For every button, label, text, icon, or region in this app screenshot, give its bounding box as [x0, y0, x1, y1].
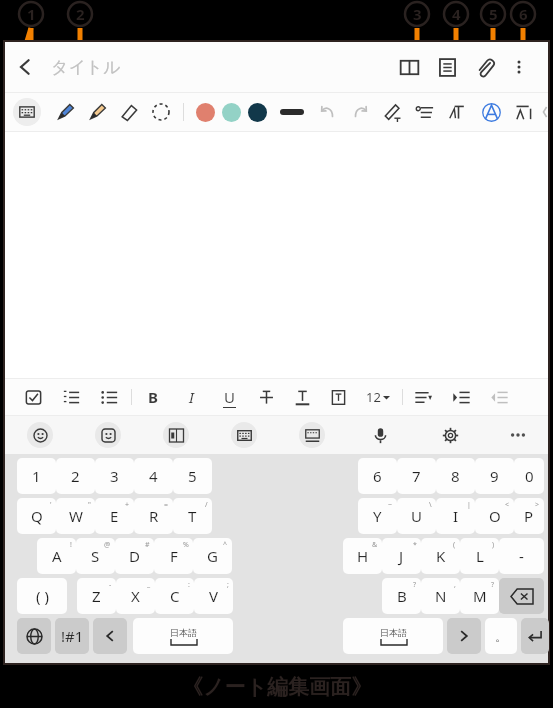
- button[interactable]: Highlight: [326, 382, 350, 412]
- button[interactable]: C: [155, 578, 194, 614]
- button[interactable]: Text convert: [442, 97, 475, 127]
- button[interactable]: B: [382, 578, 421, 614]
- button[interactable]: H: [343, 538, 382, 574]
- button[interactable]: More options: [504, 52, 534, 82]
- button[interactable]: 9: [475, 458, 514, 494]
- button[interactable]: Keyboard: [13, 98, 41, 126]
- button[interactable]: タイトル: [51, 47, 131, 87]
- button[interactable]: 6: [358, 458, 397, 494]
- button[interactable]: Voice input: [367, 422, 393, 448]
- button[interactable]: O: [475, 498, 514, 534]
- button[interactable]: Y: [358, 498, 397, 534]
- button[interactable]: Highlighter: [81, 97, 113, 127]
- button[interactable]: 1: [17, 458, 56, 494]
- button[interactable]: E: [95, 498, 134, 534]
- staticText: 日本語: [170, 627, 197, 638]
- button[interactable]: K: [421, 538, 460, 574]
- button[interactable]: Color mint: [218, 99, 244, 125]
- button[interactable]: Voice: [485, 618, 517, 654]
- button[interactable]: Align: [409, 97, 442, 127]
- button[interactable]: G: [193, 538, 232, 574]
- staticText: /: [205, 500, 208, 510]
- button[interactable]: Spacing: [508, 97, 541, 127]
- button[interactable]: List view: [428, 47, 466, 87]
- staticText: !#1: [61, 626, 84, 646]
- button[interactable]: U: [218, 382, 240, 412]
- button[interactable]: Bullet list: [97, 382, 121, 412]
- button[interactable]: Eraser: [113, 97, 145, 127]
- button[interactable]: Book view: [390, 47, 428, 87]
- button[interactable]: -: [499, 538, 544, 574]
- staticText: -: [519, 546, 524, 566]
- button[interactable]: 7: [397, 458, 436, 494]
- button[interactable]: 3: [95, 458, 134, 494]
- button[interactable]: S: [76, 538, 115, 574]
- button[interactable]: I: [180, 382, 202, 412]
- button[interactable]: Space: [133, 618, 233, 654]
- button[interactable]: Enter: [521, 618, 549, 654]
- button[interactable]: P: [514, 498, 544, 534]
- staticText: 4: [452, 4, 461, 24]
- button[interactable]: 0: [514, 458, 544, 494]
- button[interactable]: 12: [360, 382, 396, 412]
- button[interactable]: Numbered list: [59, 382, 83, 412]
- button[interactable]: Color navy: [244, 99, 270, 125]
- staticText: U: [224, 387, 235, 407]
- button[interactable]: Back: [5, 47, 45, 87]
- button[interactable]: A: [37, 538, 76, 574]
- button[interactable]: 5: [173, 458, 212, 494]
- button[interactable]: N: [421, 578, 460, 614]
- button[interactable]: GIF: [163, 422, 189, 448]
- button[interactable]: Next: [447, 618, 481, 654]
- button[interactable]: U: [397, 498, 436, 534]
- button[interactable]: Color salmon: [192, 99, 218, 125]
- button[interactable]: R: [134, 498, 173, 534]
- button[interactable]: Emoji: [27, 422, 53, 448]
- button[interactable]: Backspace: [499, 578, 544, 614]
- button[interactable]: Strikethrough: [254, 382, 278, 412]
- button[interactable]: M: [460, 578, 499, 614]
- button[interactable]: Selection: [145, 97, 177, 127]
- button[interactable]: D: [115, 538, 154, 574]
- button[interactable]: Change language: [17, 618, 51, 654]
- button[interactable]: Checklist: [21, 382, 45, 412]
- button[interactable]: L: [460, 538, 499, 574]
- button[interactable]: Previous: [93, 618, 127, 654]
- button[interactable]: Shape recognize: [475, 97, 508, 127]
- button[interactable]: F: [154, 538, 193, 574]
- button[interactable]: J: [382, 538, 421, 574]
- button[interactable]: X: [116, 578, 155, 614]
- button[interactable]: 8: [436, 458, 475, 494]
- button[interactable]: Stickers: [95, 422, 121, 448]
- button[interactable]: Pen: [49, 97, 81, 127]
- button[interactable]: Space: [343, 618, 443, 654]
- button[interactable]: Settings: [437, 422, 463, 448]
- button[interactable]: Z: [77, 578, 116, 614]
- button[interactable]: V: [194, 578, 233, 614]
- button[interactable]: 4: [134, 458, 173, 494]
- button[interactable]: Increase indent: [449, 382, 473, 412]
- button[interactable]: Alignment: [411, 382, 435, 412]
- button[interactable]: W: [56, 498, 95, 534]
- staticText: 8: [451, 466, 460, 486]
- button[interactable]: Decrease indent: [487, 382, 511, 412]
- button[interactable]: 2: [56, 458, 95, 494]
- button[interactable]: T: [173, 498, 212, 534]
- button[interactable]: Q: [17, 498, 56, 534]
- staticText: *: [413, 540, 417, 550]
- button[interactable]: I: [436, 498, 475, 534]
- button[interactable]: Pen settings: [376, 97, 409, 127]
- staticText: <: [505, 500, 510, 510]
- button[interactable]: Attach: [466, 47, 504, 87]
- button[interactable]: B: [142, 382, 164, 412]
- staticText: #: [145, 540, 150, 550]
- button[interactable]: !#1: [55, 618, 89, 654]
- button[interactable]: More: [505, 422, 531, 448]
- button[interactable]: Undo: [312, 97, 344, 127]
- button[interactable]: Redo: [344, 97, 376, 127]
- button[interactable]: Keyboard modes: [231, 422, 257, 448]
- button[interactable]: ( ): [17, 578, 67, 614]
- button[interactable]: Text color: [290, 382, 314, 412]
- button[interactable]: Handwriting: [299, 422, 325, 448]
- button[interactable]: Stroke width: [276, 99, 308, 125]
